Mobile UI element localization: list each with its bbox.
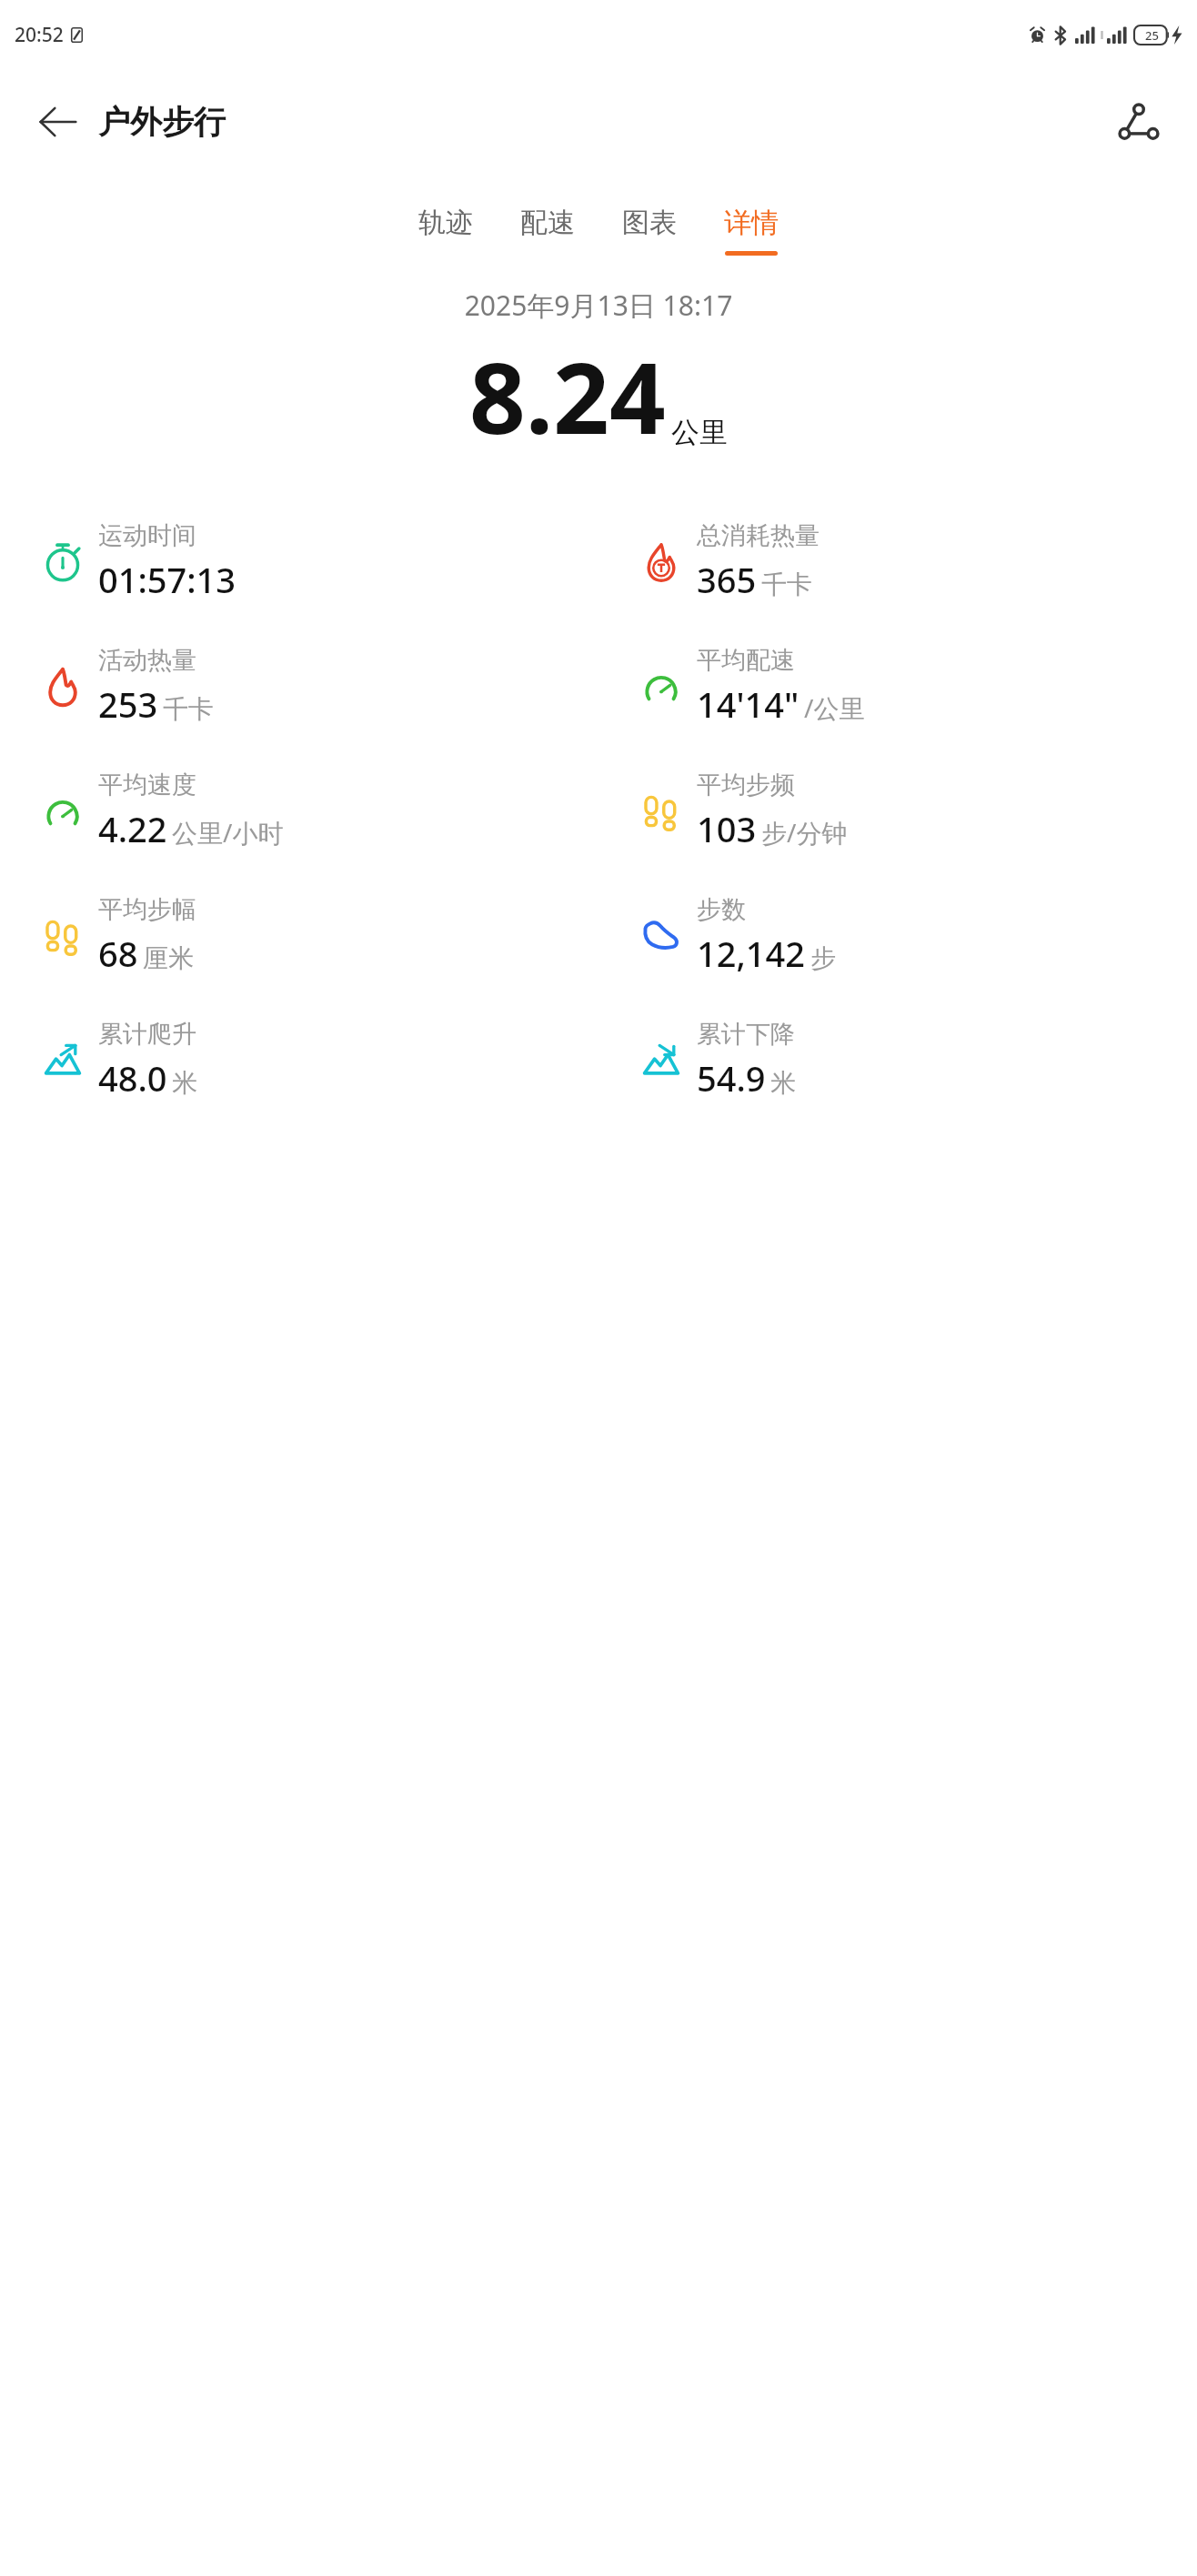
button[interactable]: 总消耗热量	[598, 499, 1197, 624]
staticText: 平均配速	[697, 645, 795, 676]
staticText: 步	[810, 942, 836, 974]
staticText: 48.0	[98, 1054, 167, 1102]
staticText: 平均步频	[697, 770, 795, 800]
button[interactable]: 轨迹	[395, 202, 497, 259]
staticText: 活动热量	[98, 645, 196, 676]
staticText: 步/分钟	[761, 815, 848, 850]
staticText: 累计爬升	[98, 1019, 196, 1050]
staticText: 平均速度	[98, 770, 196, 800]
staticText: 运动时间	[98, 520, 196, 551]
staticText: 8.24	[469, 329, 666, 463]
staticText: 68	[98, 930, 138, 977]
button[interactable]: 累计下降	[598, 998, 1197, 1122]
staticText: 米	[172, 1067, 197, 1099]
staticText: 千卡	[163, 693, 214, 725]
staticText: 103	[697, 805, 757, 852]
staticText: /公里	[804, 690, 865, 725]
staticText: 365	[697, 556, 757, 603]
staticText: 25	[1145, 27, 1159, 44]
button[interactable]: 平均步频	[598, 749, 1197, 873]
button[interactable]: 平均配速	[598, 624, 1197, 749]
staticText: 12,142	[697, 930, 806, 977]
staticText: 步数	[697, 894, 746, 925]
staticText: 4.22	[98, 805, 167, 852]
staticText: 轨迹	[418, 206, 473, 240]
button[interactable]: Back	[24, 87, 93, 156]
staticText: 厘米	[143, 942, 194, 974]
button[interactable]: 图表	[598, 202, 700, 259]
button[interactable]: 详情	[700, 202, 802, 259]
button[interactable]: 累计爬升	[0, 998, 598, 1122]
staticText: 配速	[520, 206, 575, 240]
staticText: 20:52	[15, 22, 64, 48]
staticText: 54.9	[697, 1054, 766, 1102]
staticText: 详情	[724, 206, 779, 240]
button[interactable]: 活动热量	[0, 624, 598, 749]
button[interactable]: 平均速度	[0, 749, 598, 873]
staticText: 公里/小时	[172, 815, 284, 850]
staticText: 2025年9月13日 18:17	[0, 287, 1197, 324]
staticText: 公里	[671, 415, 728, 450]
staticText: 总消耗热量	[697, 520, 820, 551]
button[interactable]: 步数	[598, 873, 1197, 998]
staticText: 千卡	[761, 569, 812, 600]
staticText: 平均步幅	[98, 894, 196, 925]
staticText: 01:57:13	[98, 556, 236, 603]
staticText: 图表	[622, 206, 677, 240]
button[interactable]: Share	[1104, 87, 1173, 156]
staticText: 253	[98, 680, 158, 728]
staticText: 米	[770, 1067, 796, 1099]
button[interactable]: 平均步幅	[0, 873, 598, 998]
staticText: 户外步行	[98, 102, 226, 142]
button[interactable]: 配速	[497, 202, 598, 259]
button[interactable]: 运动时间	[0, 499, 598, 624]
staticText: 14'14"	[697, 680, 800, 728]
staticText: 累计下降	[697, 1019, 795, 1050]
